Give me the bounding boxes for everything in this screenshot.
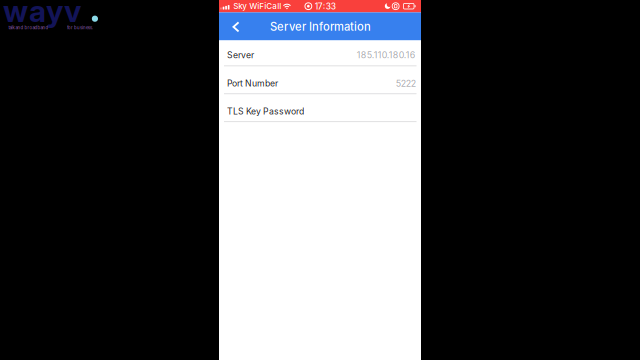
staticText: Sky WiFiCall [233,1,281,11]
staticText: 5222 [396,78,416,89]
staticText: 185.110.180.16 [357,50,416,60]
staticText: wayv [3,0,81,29]
staticText: Server [227,50,254,60]
button[interactable]: Server [219,40,421,66]
button[interactable]: TLS Key Password [219,94,421,122]
staticText: Port Number [227,78,278,89]
staticText: Server Information [270,20,371,33]
staticText: TLS Key Password [227,106,304,117]
staticText: talk and broadband [8,25,48,30]
button[interactable]: Back [223,12,249,40]
staticText: 17:33 [315,1,336,12]
button[interactable]: Port Number [219,66,421,94]
staticText: for business. [67,25,93,30]
